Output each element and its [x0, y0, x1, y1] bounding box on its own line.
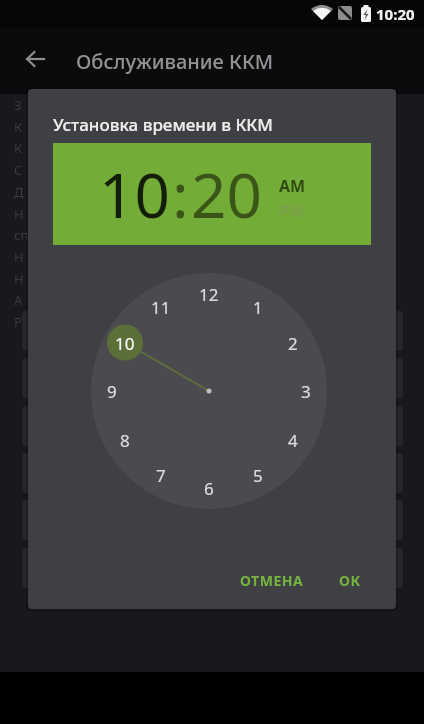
staticText: сп — [14, 226, 29, 244]
button[interactable]: 11 — [145, 291, 177, 323]
staticText: Установка времени в ККМ — [53, 113, 273, 136]
button[interactable]: 10 — [99, 152, 170, 236]
button[interactable]: 5 — [242, 459, 274, 491]
button[interactable]: 8 — [109, 424, 141, 456]
staticText: К — [14, 139, 23, 157]
staticText: 11 — [151, 296, 171, 319]
staticText: 12 — [199, 283, 219, 306]
button[interactable]: 10 — [109, 327, 141, 359]
staticText: 8 — [120, 429, 130, 452]
button[interactable]: ОТМЕНА — [224, 566, 320, 594]
button[interactable]: 2 — [277, 327, 309, 359]
staticText: 4 — [288, 429, 298, 452]
button[interactable] — [19, 42, 53, 76]
staticText: 6 — [204, 477, 214, 500]
staticText: З — [14, 96, 22, 114]
button[interactable]: 3 — [290, 375, 322, 407]
staticText: ОТМЕНА — [240, 571, 304, 590]
button[interactable]: AM — [279, 175, 306, 197]
staticText: Обслуживание ККМ — [76, 48, 274, 75]
staticText: 1 — [253, 296, 263, 319]
staticText: К — [14, 118, 23, 136]
button[interactable]: 7 — [145, 459, 177, 491]
button[interactable]: 4 — [277, 424, 309, 456]
staticText: А — [14, 291, 23, 309]
button[interactable]: 1 — [242, 291, 274, 323]
button[interactable]: 6 — [193, 472, 225, 504]
staticText: : — [172, 152, 189, 236]
staticText: Н — [14, 205, 24, 223]
staticText: 2 — [288, 332, 298, 355]
staticText: Н — [14, 270, 24, 288]
staticText: 7 — [156, 464, 166, 487]
staticText: 9 — [107, 380, 117, 403]
staticText: Д — [14, 183, 24, 201]
staticText: С — [14, 161, 23, 179]
staticText: ОК — [339, 571, 361, 590]
staticText: Н — [14, 248, 24, 266]
staticText: Р — [14, 313, 22, 331]
button[interactable]: ОК — [328, 566, 372, 594]
staticText: 3 — [301, 380, 311, 403]
button[interactable]: 9 — [96, 375, 128, 407]
button[interactable]: PM — [279, 200, 305, 222]
staticText: 10:20 — [376, 4, 415, 24]
staticText: 10 — [115, 332, 135, 355]
button[interactable]: 12 — [193, 278, 225, 310]
button[interactable]: 20 — [191, 152, 262, 236]
staticText: 5 — [253, 464, 263, 487]
